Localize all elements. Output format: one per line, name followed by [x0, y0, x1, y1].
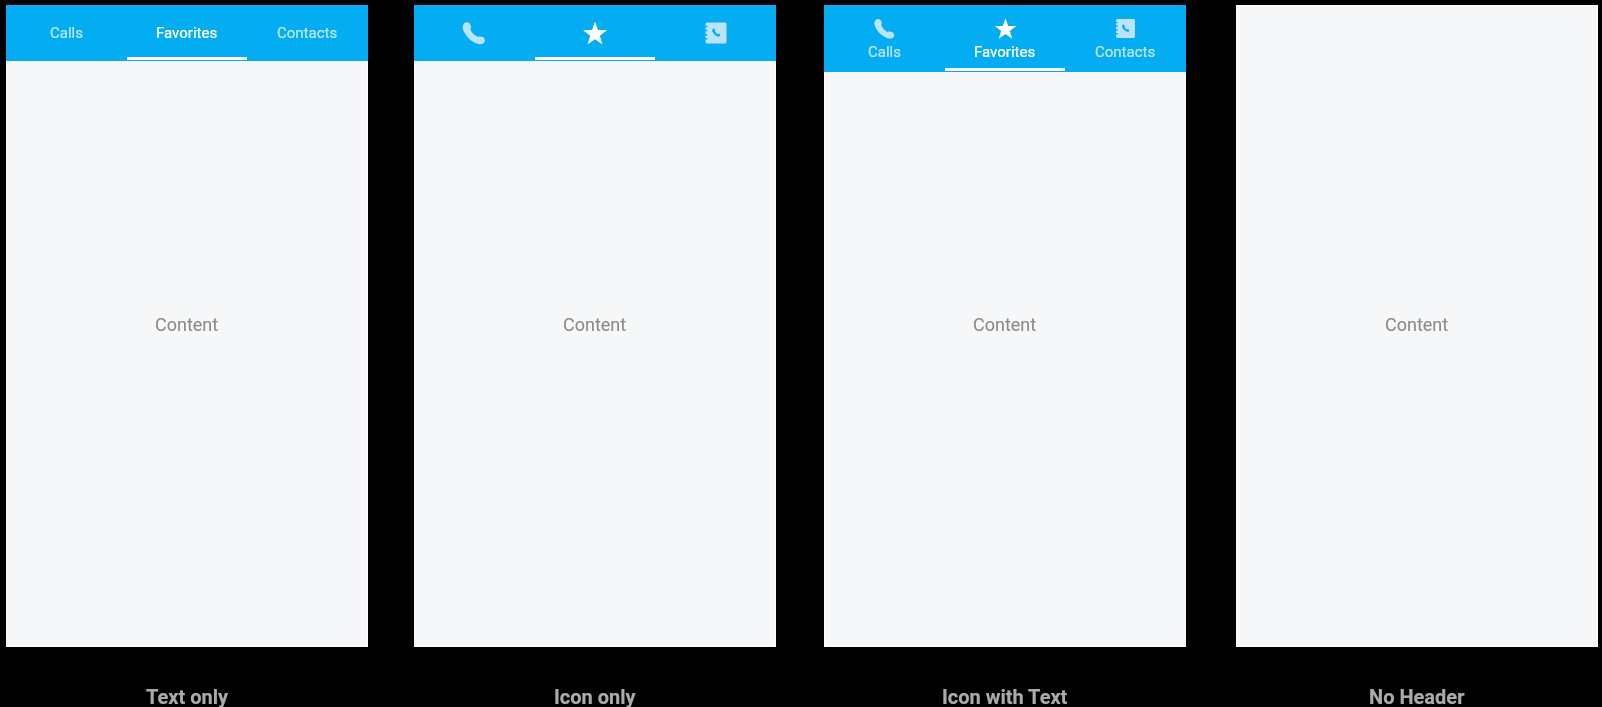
staticText: Content [973, 314, 1037, 335]
staticText: Contacts [1095, 43, 1156, 61]
button[interactable]: Favorites [534, 5, 655, 61]
staticText: Calls [868, 43, 901, 61]
staticText: Favorites [974, 43, 1036, 61]
staticText: Content [155, 314, 219, 335]
staticText: Icon with Text [942, 685, 1068, 707]
button[interactable]: Favorites [944, 5, 1065, 72]
button[interactable]: Favorites [126, 5, 247, 61]
button[interactable]: Contacts [1065, 5, 1186, 72]
staticText: Icon only [554, 685, 636, 707]
staticText: Content [1385, 314, 1449, 335]
button[interactable]: Calls [824, 5, 944, 72]
button[interactable]: Contacts [655, 5, 776, 61]
button[interactable]: Contacts [247, 5, 368, 61]
staticText: Favorites [156, 24, 218, 42]
button[interactable]: Calls [6, 5, 126, 61]
staticText: No Header [1369, 685, 1465, 707]
staticText: Contacts [277, 24, 338, 42]
staticText: Text only [146, 685, 229, 707]
staticText: Content [563, 314, 627, 335]
staticText: Calls [50, 24, 83, 42]
button[interactable]: Calls [414, 5, 534, 61]
